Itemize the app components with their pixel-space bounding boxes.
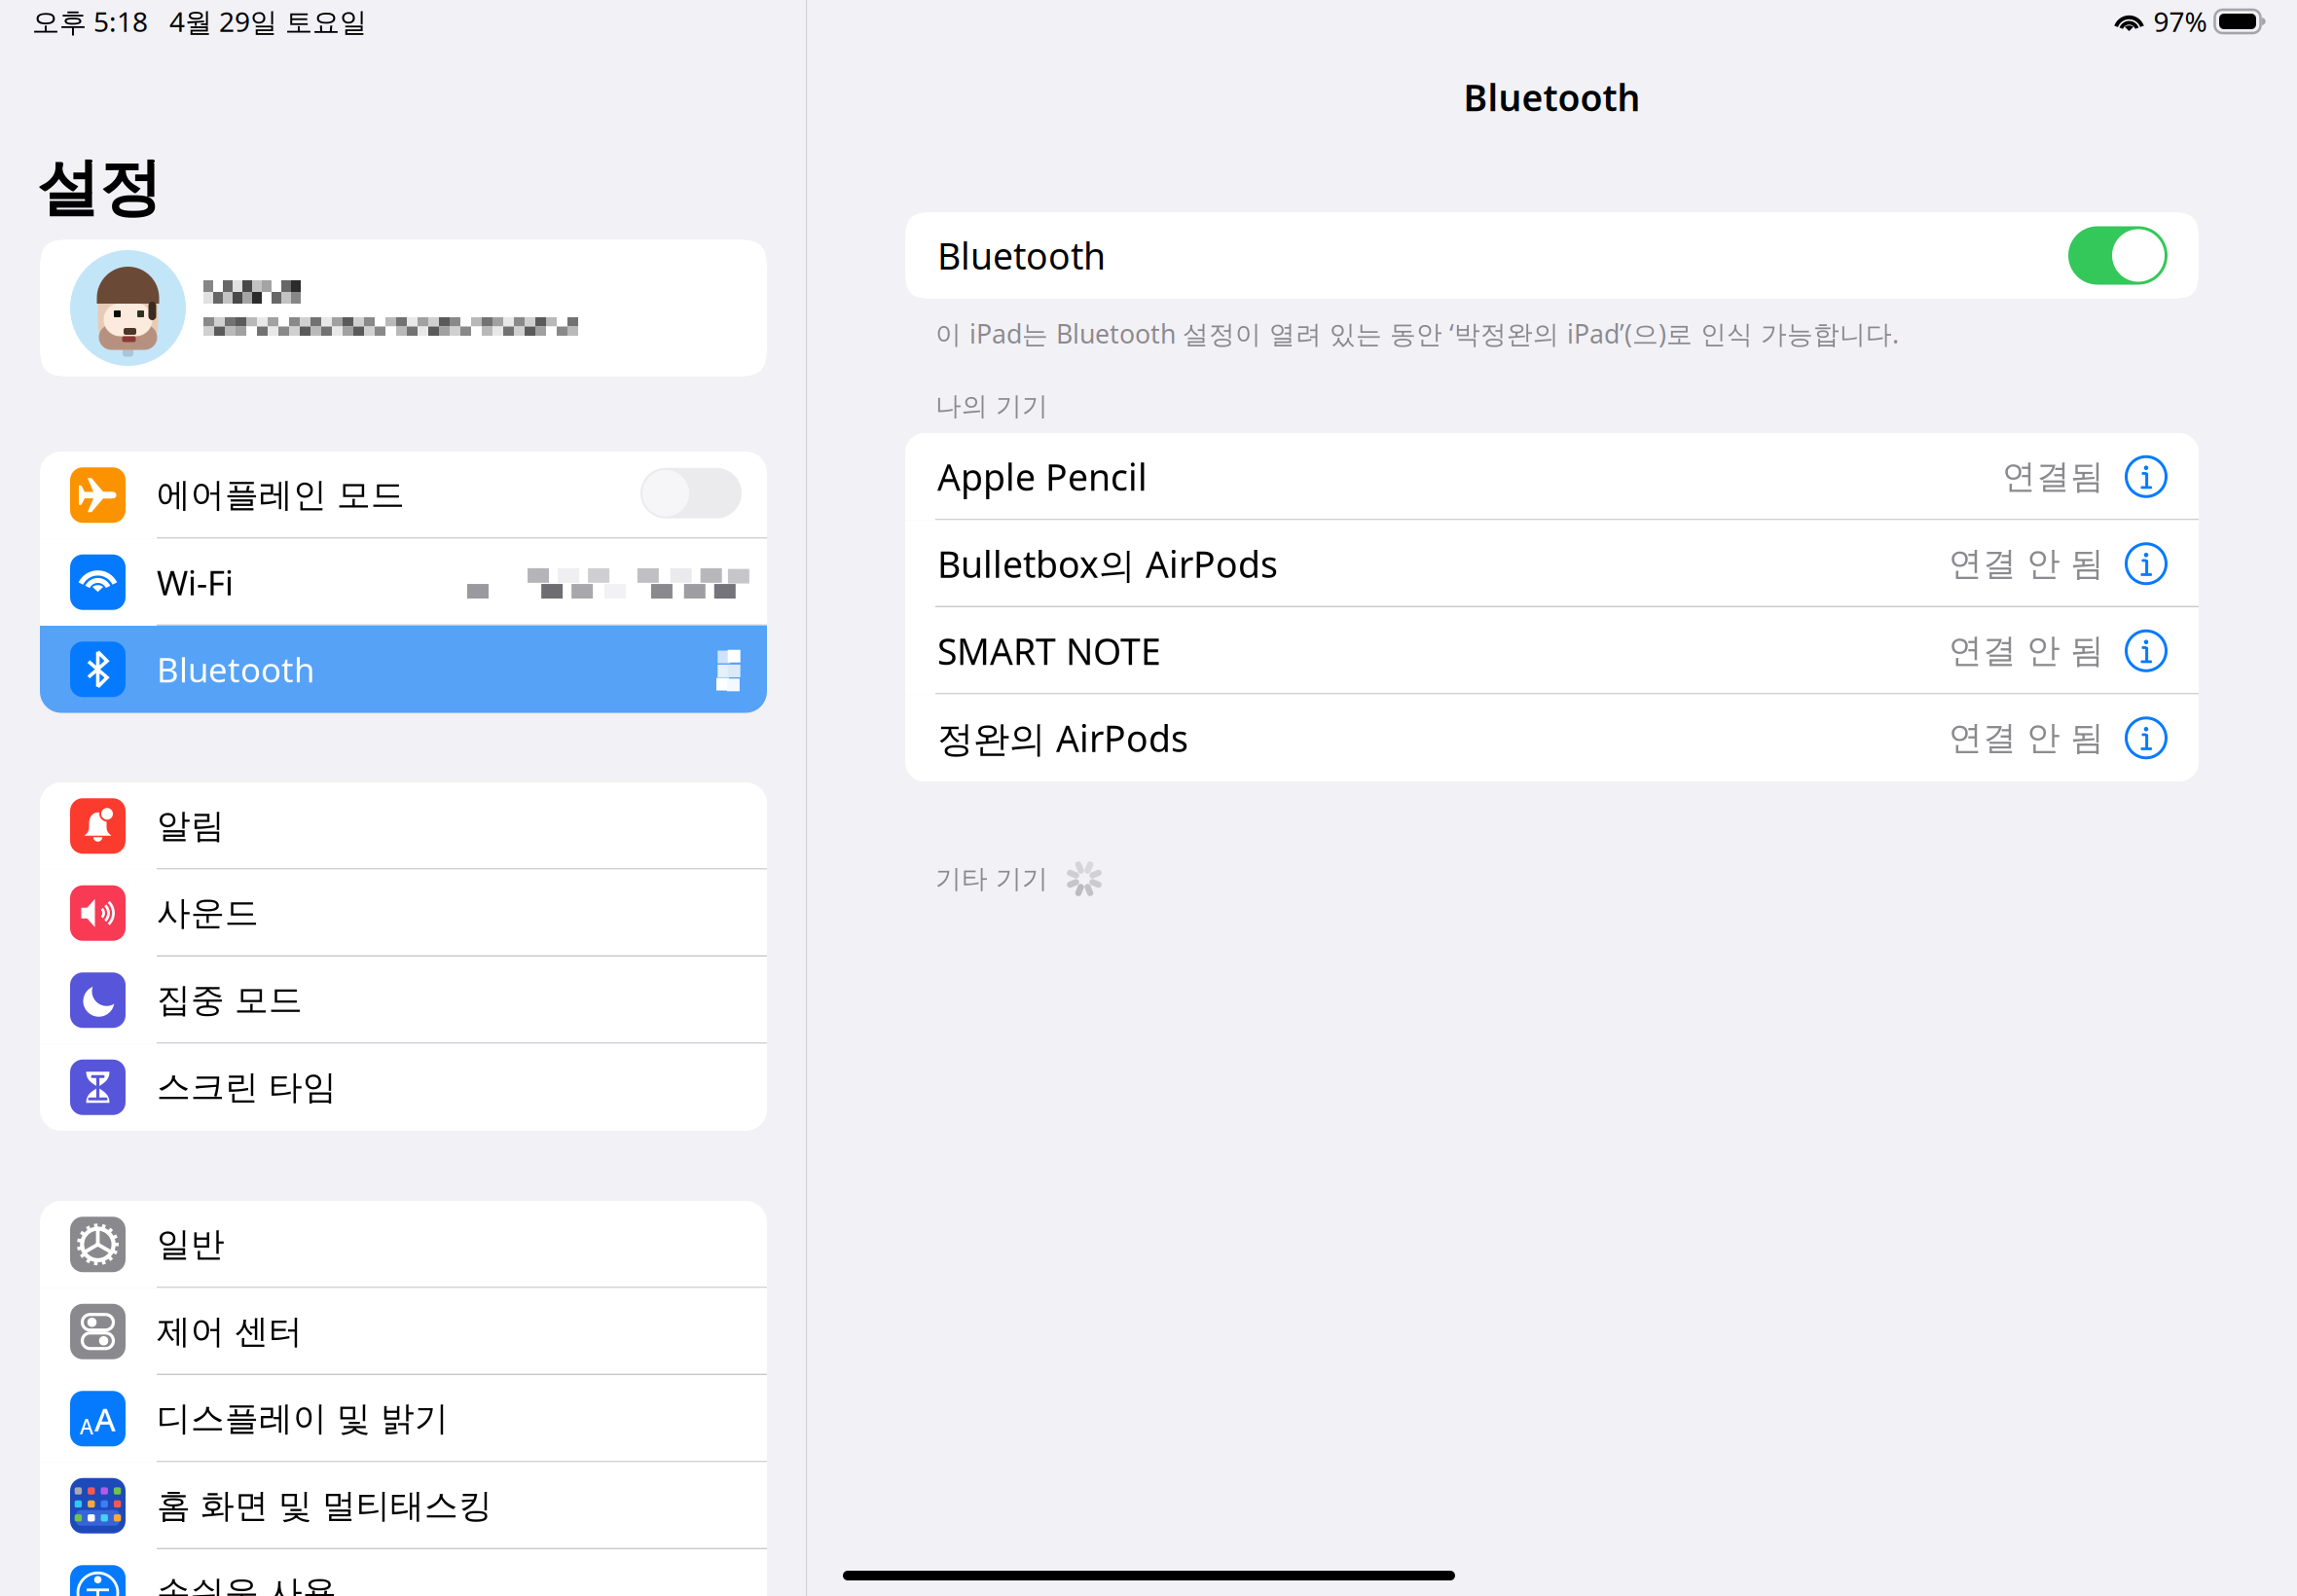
button[interactable]: Bulletbox의 AirPods xyxy=(905,520,2199,607)
staticText: 4월 29일 토요일 xyxy=(169,3,367,40)
staticText: Bluetooth xyxy=(157,647,314,692)
button[interactable]: 사운드 xyxy=(40,870,767,957)
staticText: 연결 안 됨 xyxy=(1949,717,2104,759)
staticText: Bluetooth xyxy=(1463,73,1641,121)
staticText: 설정 xyxy=(37,150,162,226)
button[interactable]: 일반 xyxy=(40,1201,767,1288)
button[interactable]: Bluetooth xyxy=(40,626,767,713)
button[interactable]: 정완의 AirPods xyxy=(905,694,2199,781)
staticText: 디스플레이 및 밝기 xyxy=(157,1398,449,1439)
button[interactable]: 스크린 타임 xyxy=(40,1044,767,1131)
staticText: 에어플레인 모드 xyxy=(157,474,405,516)
button[interactable]: 제어 센터 xyxy=(40,1288,767,1375)
staticText: 사운드 xyxy=(157,892,259,934)
button[interactable]: SMART NOTE xyxy=(905,607,2199,694)
staticText: Apple Pencil xyxy=(937,453,1148,501)
staticText: 홈 화면 및 멀티태스킹 xyxy=(157,1485,492,1527)
staticText: 오후 5:18 xyxy=(32,3,148,40)
staticText: 집중 모드 xyxy=(157,979,303,1021)
staticText: 알림 xyxy=(157,805,225,847)
button[interactable]: A xyxy=(40,1375,767,1462)
button[interactable] xyxy=(40,239,767,377)
staticText: 일반 xyxy=(157,1224,225,1265)
button[interactable]: 알림 xyxy=(40,782,767,870)
staticText: 손쉬운 사용 xyxy=(157,1572,337,1596)
staticText: 이 iPad는 Bluetooth 설정이 열려 있는 동안 ‘박정완의 iPa… xyxy=(935,316,1899,351)
staticText: 연결 안 됨 xyxy=(1949,630,2104,672)
staticText: A xyxy=(94,1397,116,1440)
staticText: 기타 기기 xyxy=(935,863,1048,895)
staticText: 97% xyxy=(2153,3,2207,40)
button[interactable]: 집중 모드 xyxy=(40,957,767,1044)
button[interactable]: 에어플레인 모드 xyxy=(40,452,767,539)
staticText: Bulletbox의 AirPods xyxy=(937,540,1278,588)
button[interactable]: Bluetooth on xyxy=(2068,226,2168,285)
staticText: 스크린 타임 xyxy=(157,1067,337,1108)
staticText: Wi-Fi xyxy=(157,560,234,605)
staticText: 정완의 AirPods xyxy=(937,714,1188,762)
button[interactable]: Apple Pencil xyxy=(905,433,2199,520)
button[interactable]: Wi-Fi xyxy=(40,539,767,626)
staticText: 연결 안 됨 xyxy=(1949,543,2104,584)
button[interactable]: 손쉬운 사용 xyxy=(40,1549,767,1596)
button[interactable]: 홈 화면 및 멀티태스킹 xyxy=(40,1462,767,1549)
staticText: Bluetooth xyxy=(937,231,1106,280)
staticText: 연결됨 xyxy=(2002,456,2104,497)
staticText: 나의 기기 xyxy=(935,390,1048,422)
staticText: A xyxy=(80,1413,93,1440)
staticText: 제어 센터 xyxy=(157,1311,303,1352)
staticText: SMART NOTE xyxy=(937,627,1161,675)
